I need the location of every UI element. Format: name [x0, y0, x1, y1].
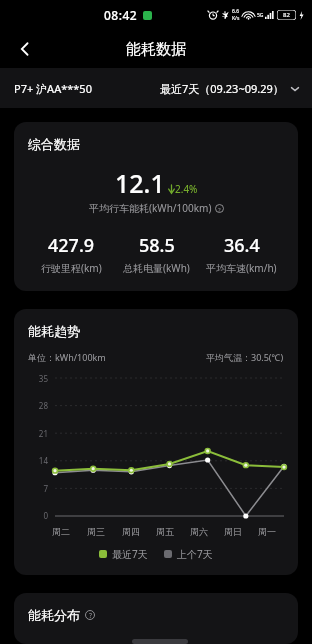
staticText: 14 — [38, 455, 48, 466]
staticText: 82 — [283, 11, 290, 19]
staticText: 能耗分布 — [28, 607, 80, 623]
staticText: 周日 — [224, 526, 242, 537]
staticText: 周四 — [122, 526, 140, 537]
staticText: 427.9 — [48, 233, 95, 258]
staticText: 周五 — [156, 526, 174, 537]
staticText: 能耗趋势 — [28, 323, 80, 339]
staticText: 0 — [43, 510, 48, 521]
staticText: 能耗数据 — [126, 40, 186, 59]
staticText: 总耗电量(kWh) — [123, 261, 190, 275]
staticText: 58.5 — [139, 233, 175, 258]
staticText: 上个7天 — [177, 547, 213, 561]
staticText: ? — [218, 205, 221, 213]
staticText: 08:42 — [104, 7, 138, 23]
staticText: 7 — [43, 483, 48, 494]
staticText: 28 — [38, 400, 48, 411]
staticText: P7+ 沪AA***50 — [14, 81, 92, 96]
staticText: 36.4 — [224, 233, 260, 258]
button[interactable]: Back — [8, 32, 42, 66]
button[interactable]: 综合数据 — [14, 122, 298, 291]
staticText: 综合数据 — [28, 136, 80, 152]
staticText: 6.6 — [232, 8, 240, 15]
staticText: K/s — [232, 15, 240, 22]
staticText: 周二 — [52, 526, 70, 537]
staticText: 2.4% — [175, 182, 198, 196]
staticText: 5G — [257, 12, 264, 19]
staticText: 平均行车能耗(kWh/100km) — [89, 201, 212, 215]
button[interactable]: 能耗趋势 — [14, 309, 298, 575]
button[interactable]: 能耗分布 — [14, 593, 298, 644]
staticText: 周一 — [258, 526, 276, 537]
staticText: 行驶里程(km) — [41, 261, 102, 275]
staticText: 12.1 — [115, 166, 165, 200]
button[interactable]: 最近7天（09.23~09.29） — [160, 81, 300, 96]
staticText: 平均车速(km/h) — [206, 261, 277, 275]
staticText: 35 — [38, 373, 48, 384]
staticText: 最近7天 — [112, 547, 148, 561]
staticText: ? — [89, 611, 92, 620]
staticText: 21 — [38, 428, 48, 439]
staticText: 平均气温：30.5(℃) — [206, 351, 284, 363]
staticText: 周三 — [87, 526, 105, 537]
button[interactable]: P7+ 沪AA***50 — [14, 81, 92, 96]
staticText: 周六 — [190, 526, 208, 537]
staticText: 最近7天（09.23~09.29） — [160, 81, 284, 96]
staticText: 单位：kWh/100km — [28, 351, 106, 363]
